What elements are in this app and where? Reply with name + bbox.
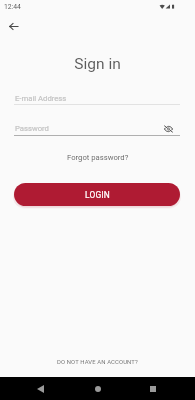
button[interactable]: LOGIN xyxy=(14,183,180,206)
staticText: LOGIN xyxy=(85,190,111,200)
button[interactable]: Show password xyxy=(160,120,177,137)
button[interactable]: Forgot password? xyxy=(63,151,133,164)
staticText: Sign in xyxy=(0,55,195,73)
button[interactable]: Home xyxy=(86,377,109,400)
staticText: E-mail Address xyxy=(15,94,67,103)
button[interactable]: Back xyxy=(2,15,25,38)
button[interactable]: DO NOT HAVE AN ACCOUNT? xyxy=(51,357,144,368)
button[interactable]: Recents xyxy=(141,377,164,400)
button[interactable]: Back xyxy=(29,377,52,400)
staticText: Password xyxy=(15,124,49,133)
staticText: 12:44 xyxy=(4,3,21,11)
